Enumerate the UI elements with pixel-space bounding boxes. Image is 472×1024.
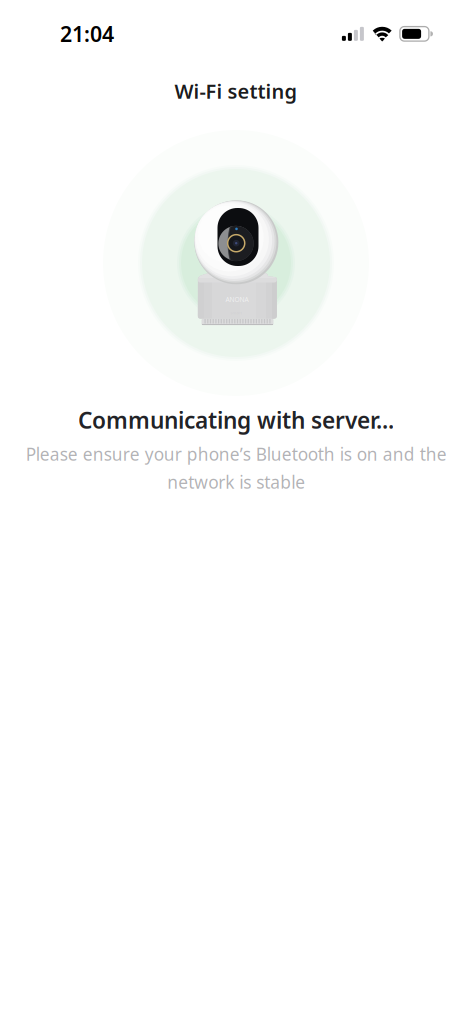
staticText: Communicating with server...	[78, 405, 394, 435]
staticText: Wi-Fi setting	[174, 78, 297, 104]
staticText: ANONA	[225, 295, 248, 304]
staticText: Please ensure your phone’s Bluetooth is …	[25, 442, 446, 493]
staticText: 21:04	[60, 20, 114, 48]
